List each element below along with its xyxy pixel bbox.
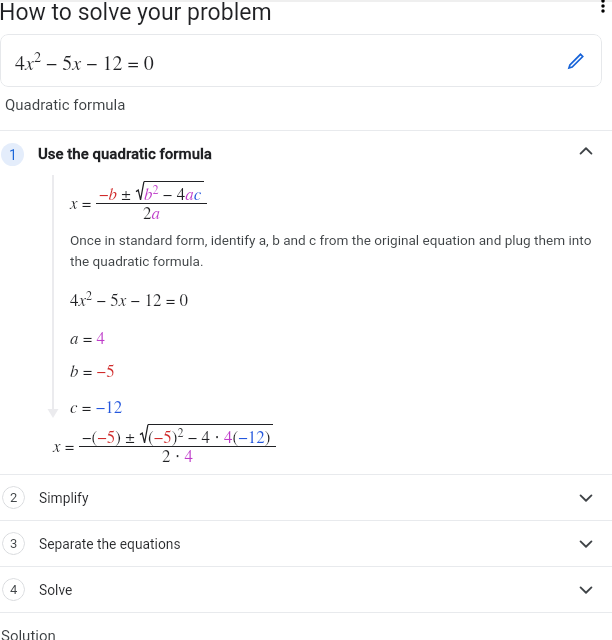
button[interactable]: 3 <box>0 521 612 566</box>
button[interactable]: Expand step <box>574 486 598 510</box>
button[interactable]: 2 <box>0 475 612 520</box>
staticText: 4x2 − 5x − 12 = 0 <box>15 47 154 75</box>
staticText: 1 <box>9 147 17 163</box>
staticText: How to solve your problem <box>0 0 272 26</box>
button[interactable]: Expand step <box>574 532 598 556</box>
staticText: Once in standard form, identify a, b and… <box>70 232 600 270</box>
staticText: b2 − 4ac <box>144 181 202 205</box>
staticText: Solve <box>39 582 73 598</box>
staticText: 4x2 − 5x − 12 = 0 <box>70 287 188 311</box>
button[interactable]: More options <box>591 0 612 18</box>
button[interactable]: Expand step <box>574 578 598 602</box>
button[interactable]: 4x2 − 5x − 12 = 0 <box>0 34 602 87</box>
staticText: 2a <box>143 201 160 224</box>
staticText: Quadratic formula <box>5 96 126 114</box>
staticText: 4 <box>10 582 18 597</box>
staticText: (−5)2 − 4 ⋅ 4(−12) <box>148 424 271 448</box>
staticText: b = −5 <box>70 359 115 382</box>
staticText: a = 4 <box>70 326 106 349</box>
staticText: 2 <box>10 490 18 505</box>
button[interactable]: Collapse step <box>574 139 598 163</box>
button[interactable]: 4 <box>0 567 612 612</box>
staticText: c = −12 <box>70 395 123 418</box>
staticText: Use the quadratic formula <box>38 145 212 163</box>
staticText: Simplify <box>39 490 89 506</box>
staticText: x = <box>53 434 79 457</box>
button[interactable]: 1 <box>0 131 612 177</box>
staticText: 2 ⋅ 4 <box>162 444 193 467</box>
staticText: Separate the equations <box>39 536 181 552</box>
staticText: x = <box>70 191 96 214</box>
staticText: Solution <box>1 627 56 640</box>
staticText: 3 <box>10 536 18 551</box>
staticText: −b ± <box>99 182 136 205</box>
staticText: −(−5) ± <box>82 425 140 448</box>
button[interactable]: Edit <box>564 49 588 73</box>
